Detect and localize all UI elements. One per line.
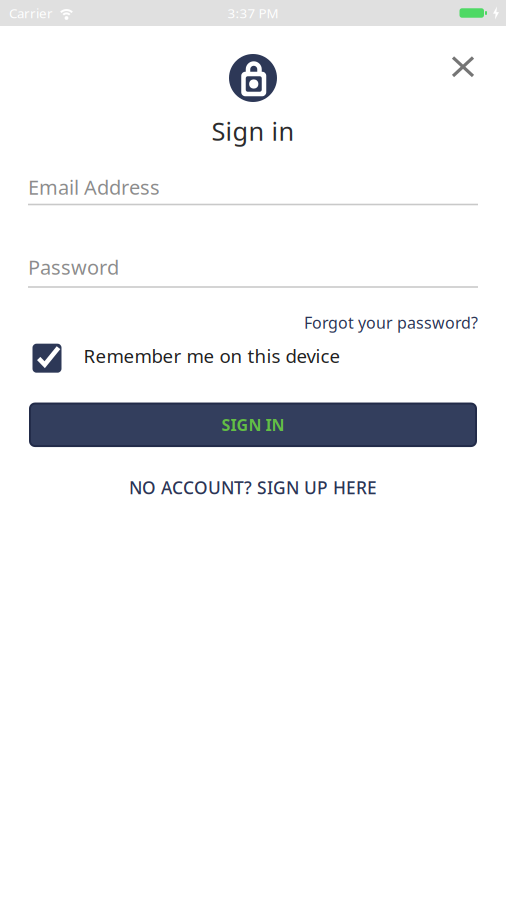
staticText: SIGN IN (221, 414, 284, 435)
staticText: Carrier (9, 4, 53, 22)
staticText: 3:37 PM (227, 4, 278, 22)
staticText: Forgot your password? (304, 312, 478, 333)
button[interactable]: Remember me on this device (32, 344, 478, 373)
staticText: Password (28, 254, 119, 280)
button[interactable] (446, 50, 480, 84)
button[interactable]: Forgot your password? (28, 312, 478, 333)
button[interactable]: SIGN IN (30, 404, 476, 446)
staticText: NO ACCOUNT? SIGN UP HERE (129, 476, 377, 499)
staticText: Email Address (28, 174, 160, 200)
button[interactable]: NO ACCOUNT? SIGN UP HERE (129, 476, 377, 499)
staticText: Sign in (211, 114, 294, 148)
staticText: Remember me on this device (83, 343, 340, 368)
